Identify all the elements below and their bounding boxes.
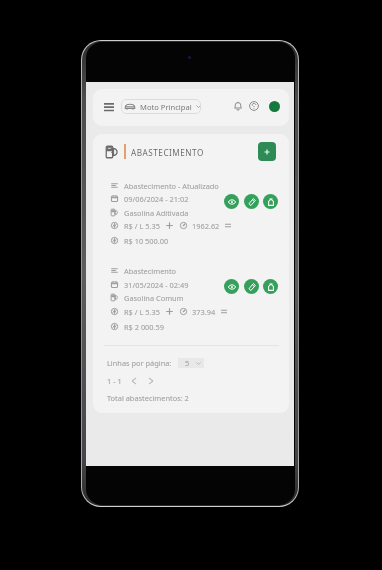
staticText: Abastecimento - Atualizado bbox=[124, 181, 219, 191]
staticText: 373.94 bbox=[192, 307, 216, 317]
button[interactable]: Previous page bbox=[128, 375, 140, 387]
button[interactable]: View bbox=[224, 279, 239, 294]
button[interactable]: Menu bbox=[102, 98, 115, 116]
staticText: 1962.62 bbox=[192, 221, 220, 231]
button[interactable]: Add bbox=[258, 142, 276, 161]
staticText: 1 - 1 bbox=[107, 376, 122, 386]
staticText: ABASTECIMENTO bbox=[131, 147, 204, 158]
staticText: R$ 10 500.00 bbox=[124, 236, 169, 246]
button[interactable]: Notifications bbox=[232, 100, 244, 112]
staticText: Abastecimento bbox=[124, 266, 177, 276]
button[interactable]: Edit bbox=[244, 279, 259, 294]
button[interactable]: Delete bbox=[263, 194, 278, 209]
staticText: R$ / L 5.35 bbox=[124, 307, 160, 317]
staticText: 5 bbox=[185, 358, 190, 368]
staticText: Gasolina Comum bbox=[124, 293, 184, 303]
staticText: Gasolina Aditivada bbox=[124, 208, 189, 218]
staticText: Total abastecimentos: 2 bbox=[107, 393, 189, 403]
staticText: Moto Principal bbox=[140, 102, 192, 112]
staticText: R$ / L 5.35 bbox=[124, 221, 160, 231]
staticText: R$ 2 000.59 bbox=[124, 322, 165, 332]
button[interactable]: Edit bbox=[244, 194, 259, 209]
button[interactable]: Moto Principal bbox=[121, 99, 201, 114]
button[interactable]: View bbox=[224, 194, 239, 209]
staticText: 09/06/2024 - 21:02 bbox=[124, 194, 189, 204]
staticText: Linhas por página: bbox=[107, 358, 172, 368]
button[interactable]: 5 bbox=[178, 358, 204, 368]
button[interactable]: Delete bbox=[263, 279, 278, 294]
button[interactable]: Help bbox=[248, 100, 260, 112]
button[interactable]: Profile bbox=[269, 101, 280, 112]
staticText: 31/05/2024 - 02:49 bbox=[124, 280, 189, 290]
button[interactable]: Next page bbox=[145, 375, 157, 387]
